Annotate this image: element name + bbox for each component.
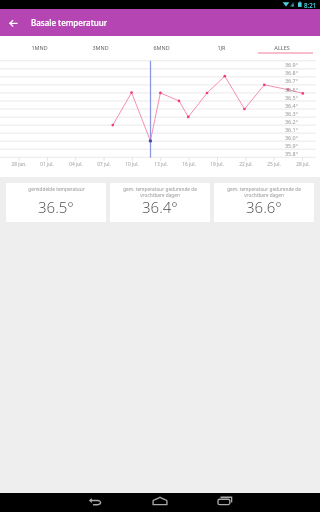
staticText: 13 jul.: [154, 161, 168, 168]
button[interactable]: 1MND: [9, 36, 69, 54]
button[interactable]: Recents: [193, 493, 257, 512]
staticText: 1JR: [217, 44, 226, 51]
staticText: 07 jul.: [97, 161, 111, 168]
staticText: ALLES: [274, 44, 290, 51]
staticText: 36.6°: [285, 86, 299, 93]
button[interactable]: Home: [128, 493, 192, 512]
button[interactable]: 1JR: [191, 36, 251, 54]
button[interactable]: gem. temperatuur gedurende de vruchtbare…: [214, 183, 314, 222]
staticText: 36.2°: [285, 118, 299, 125]
staticText: 36.9°: [285, 61, 299, 68]
button[interactable]: 3MND: [70, 36, 130, 54]
staticText: 36.5°: [38, 197, 74, 217]
button[interactable]: gem. temperatuur gedurende de vruchtbare…: [110, 183, 210, 222]
staticText: 25 jul.: [267, 161, 281, 168]
staticText: 28 jul.: [296, 161, 310, 168]
staticText: 04 jul.: [69, 161, 83, 168]
staticText: 22 jul.: [239, 161, 253, 168]
staticText: 36.8°: [285, 69, 299, 76]
button[interactable]: ALLES: [252, 36, 312, 54]
staticText: gemiddelde temperatuur: [28, 186, 85, 192]
staticText: 8:21: [304, 1, 317, 9]
staticText: 28 jun.: [11, 161, 27, 168]
staticText: 10 jul.: [125, 161, 139, 168]
staticText: 35.9°: [285, 142, 299, 149]
staticText: 36.4°: [142, 197, 178, 217]
staticText: 36.1°: [285, 126, 299, 133]
staticText: 16 jul.: [182, 161, 196, 168]
staticText: 36.0°: [285, 134, 299, 141]
button[interactable]: Back: [0, 10, 26, 36]
staticText: 6MND: [153, 44, 170, 51]
staticText: 1MND: [31, 44, 48, 51]
button[interactable]: gemiddelde temperatuur: [6, 183, 106, 222]
staticText: 35.8°: [285, 150, 299, 157]
staticText: gem. temperatuur gedurende de vruchtbare…: [220, 186, 308, 198]
staticText: Basale temperatuur: [31, 17, 108, 28]
staticText: 19 jul.: [210, 161, 224, 168]
button[interactable]: 6MND: [131, 36, 191, 54]
staticText: 36.7°: [285, 77, 299, 84]
staticText: 3MND: [92, 44, 109, 51]
staticText: 36.6°: [246, 197, 282, 217]
staticText: 36.3°: [285, 110, 299, 117]
staticText: gem. temperatuur gedurende de vruchtbare…: [116, 186, 204, 198]
staticText: 36.4°: [285, 102, 299, 109]
staticText: 36.5°: [285, 94, 299, 101]
button[interactable]: Back: [63, 493, 127, 512]
staticText: 01 jul.: [40, 161, 54, 168]
